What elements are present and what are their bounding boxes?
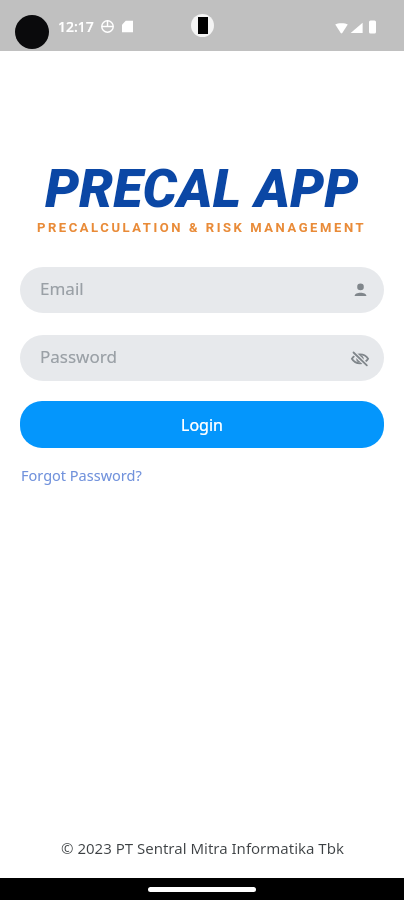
staticText: Email [40,277,352,300]
other: Show password [351,351,369,366]
staticText: Forgot Password? [21,465,142,485]
staticText: PRECAL APP [45,157,359,220]
staticText: PRECALCULATION & RISK MANAGEMENT [37,220,367,235]
staticText: Login [181,414,223,436]
staticText: Password [40,345,351,368]
button[interactable]: Login [20,401,384,448]
button[interactable]: Password [20,335,384,381]
staticText: 12:17 [58,17,94,36]
button[interactable]: Email [20,267,384,313]
staticText: © 2023 PT Sentral Mitra Informatika Tbk [61,838,344,858]
button[interactable]: Forgot Password? [21,465,142,485]
other: Account [352,282,369,299]
